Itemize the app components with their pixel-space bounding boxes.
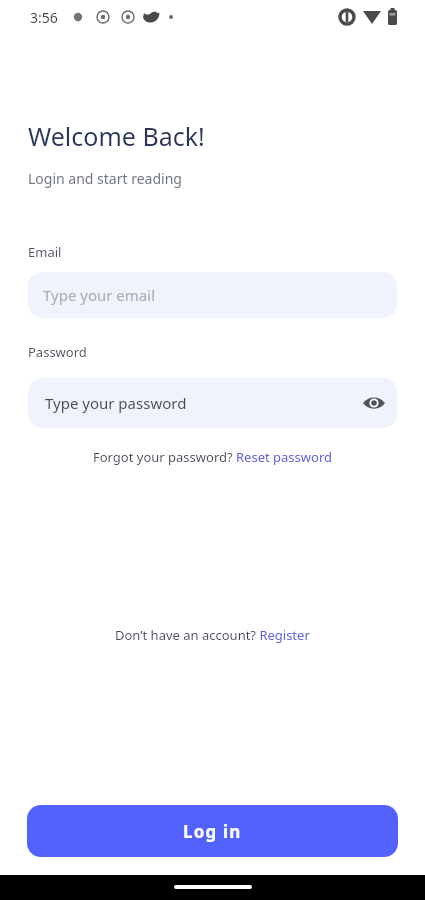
staticText: Log in xyxy=(183,820,242,843)
button[interactable]: Type your password xyxy=(28,378,397,428)
staticText: Password xyxy=(28,343,87,361)
staticText: Email xyxy=(28,243,62,261)
button[interactable]: Forgot your password? Reset password xyxy=(0,448,425,466)
button[interactable]: Don’t have an account? Register xyxy=(0,626,425,644)
staticText: Forgot your password? Reset password xyxy=(93,448,332,466)
staticText: 3:56 xyxy=(30,8,58,27)
staticText: Login and start reading xyxy=(28,169,182,188)
button[interactable]: Type your email xyxy=(28,272,397,318)
staticText: Type your email xyxy=(43,285,156,305)
button[interactable]: Log in xyxy=(27,805,398,857)
button[interactable] xyxy=(360,389,388,417)
staticText: Type your password xyxy=(45,393,187,413)
staticText: Don’t have an account? Register xyxy=(115,626,310,644)
staticText: Welcome Back! xyxy=(28,119,205,153)
